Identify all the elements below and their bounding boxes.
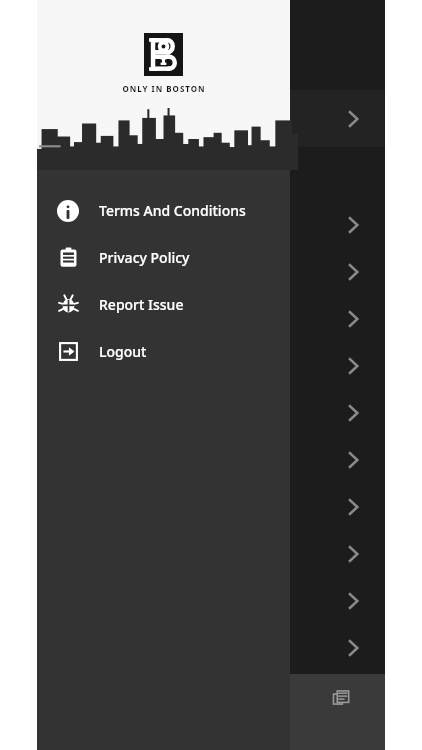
button[interactable]	[37, 530, 385, 577]
button[interactable]	[37, 483, 385, 530]
staticText: Privacy Policy	[99, 248, 190, 267]
button[interactable]	[37, 577, 385, 624]
staticText: ONLY IN BOSTON	[122, 83, 206, 94]
button[interactable]	[37, 295, 385, 342]
button[interactable]	[37, 90, 385, 147]
button[interactable]	[37, 624, 385, 671]
button[interactable]: Report Issue	[37, 281, 290, 328]
button[interactable]	[37, 436, 385, 483]
button[interactable]: Privacy Policy	[37, 234, 290, 281]
button[interactable]	[37, 248, 385, 295]
staticText: Report Issue	[99, 295, 184, 314]
button[interactable]	[37, 201, 385, 248]
button[interactable]: Terms And Conditions	[37, 187, 290, 234]
button[interactable]	[37, 342, 385, 389]
staticText: and Silver ...	[197, 155, 267, 195]
staticText: Terms And Conditions	[99, 201, 246, 220]
button[interactable]: Logout	[37, 328, 290, 375]
button[interactable]	[37, 389, 385, 436]
staticText: Logout	[99, 342, 147, 361]
button[interactable]: and Silver ...	[47, 155, 267, 195]
button[interactable]: News	[298, 674, 385, 720]
